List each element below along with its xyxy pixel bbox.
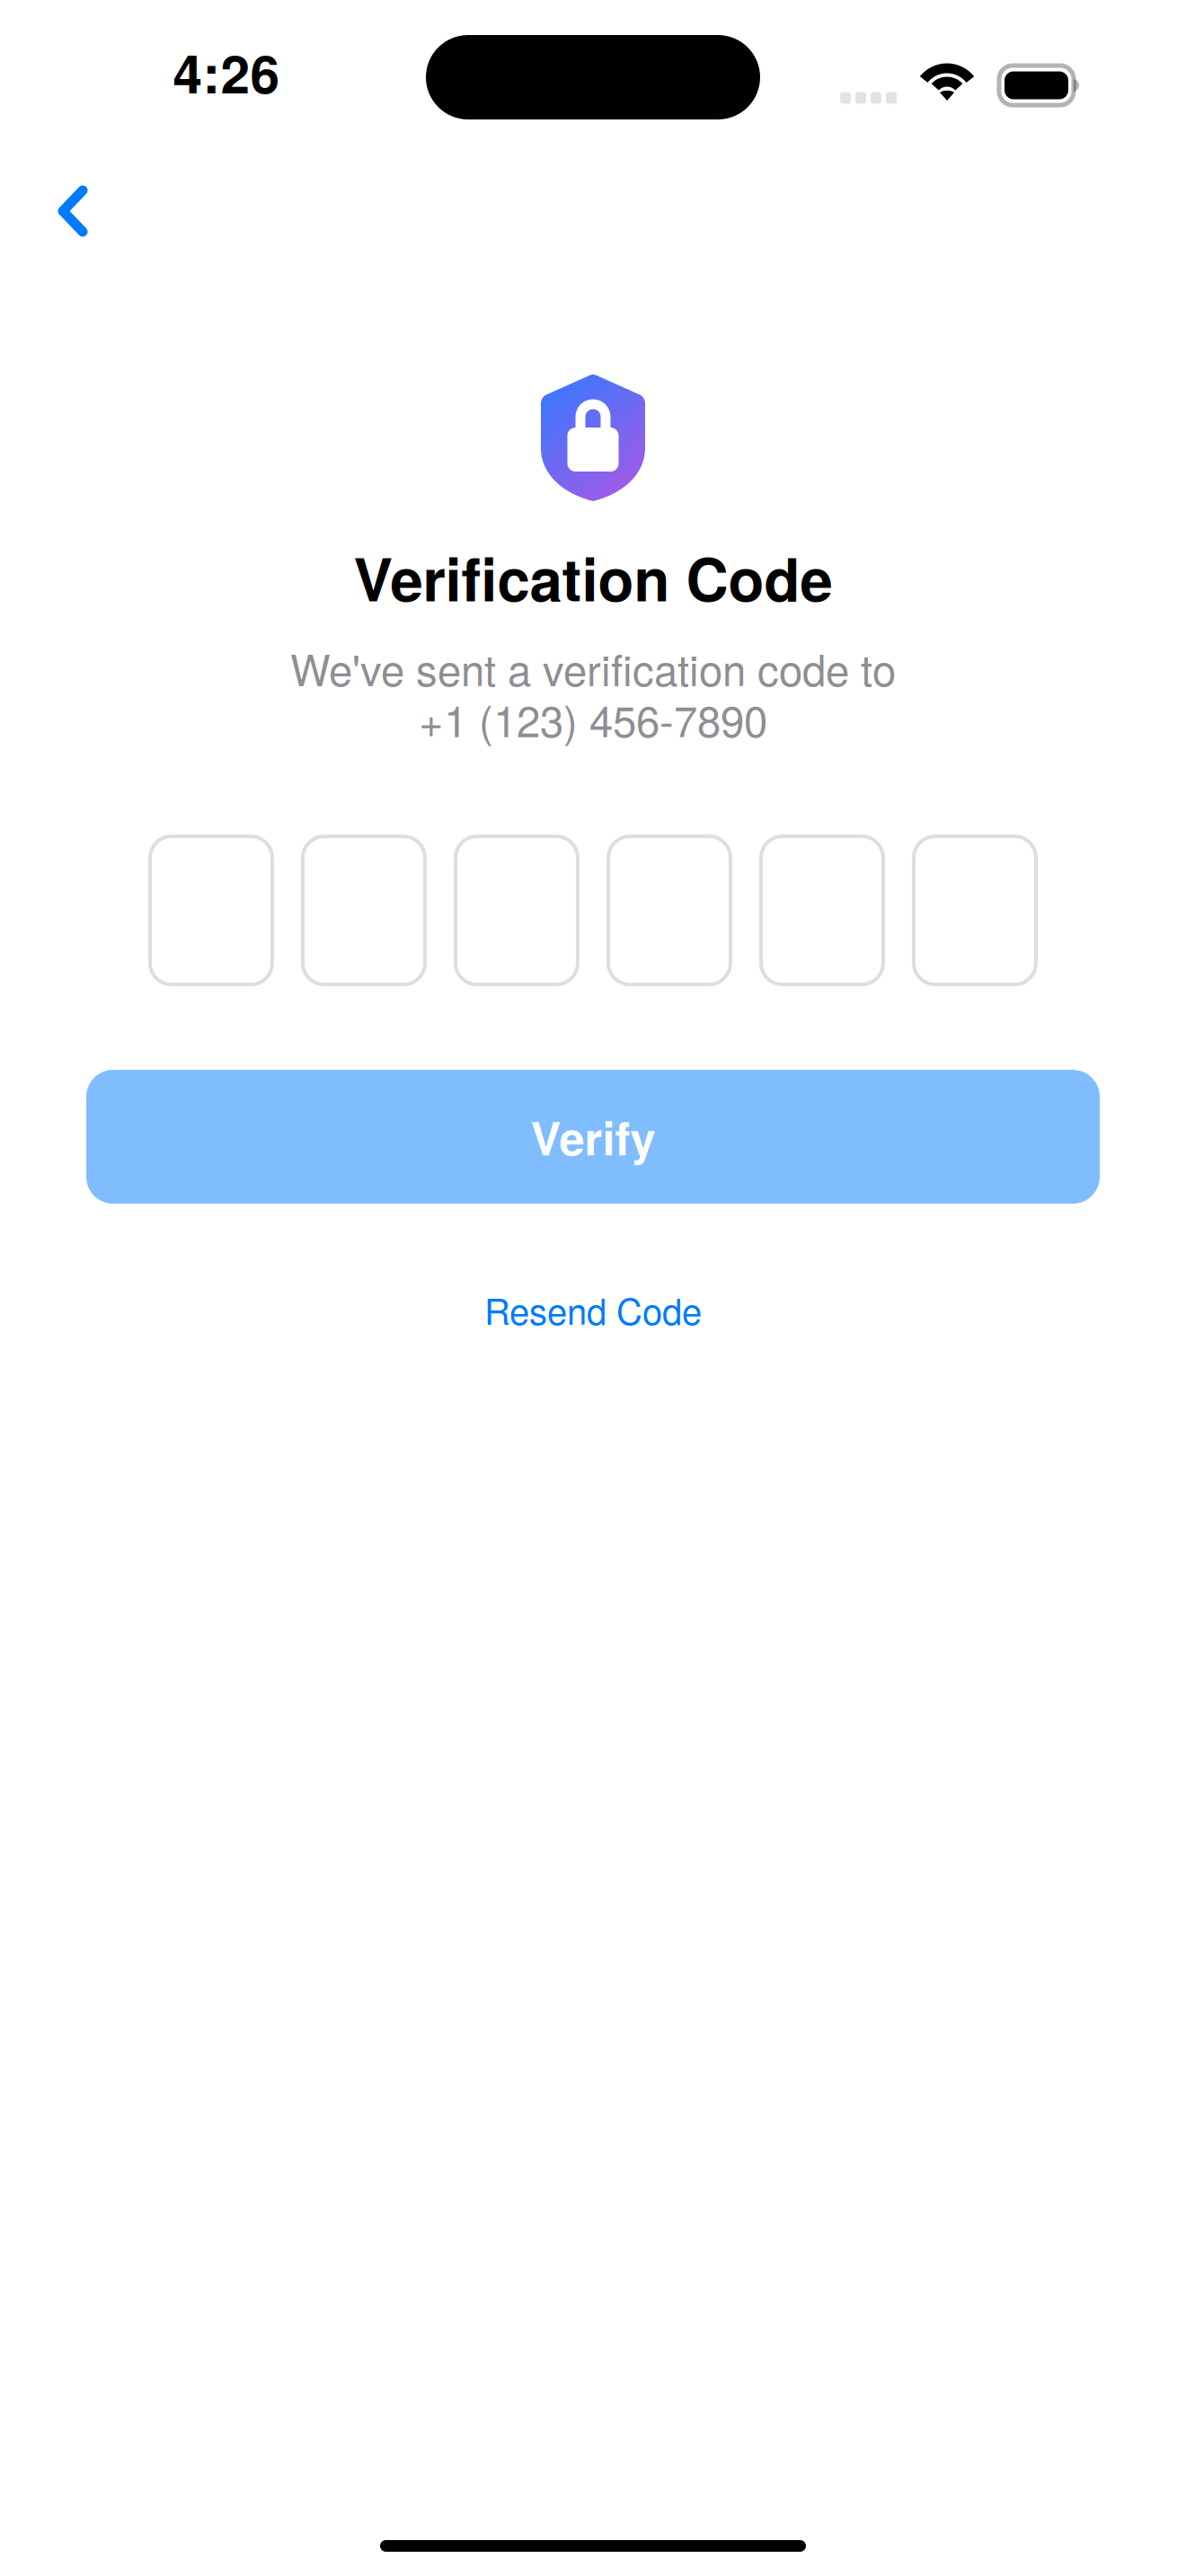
staticText: 4:26 <box>173 34 280 110</box>
button[interactable]: Code digit 1 <box>150 836 272 985</box>
button[interactable]: Resend Code <box>448 1271 738 1348</box>
staticText: Verify <box>531 1104 655 1169</box>
button[interactable]: Back <box>0 144 124 257</box>
staticText: +1 (123) 456-7890 <box>419 688 767 749</box>
button[interactable]: Code digit 2 <box>303 836 425 985</box>
button[interactable]: Code digit 4 <box>608 836 730 985</box>
button[interactable]: Code digit 6 <box>914 836 1036 985</box>
staticText: We've sent a verification code to <box>290 637 896 698</box>
button[interactable]: Code digit 3 <box>456 836 578 985</box>
staticText: Verification Code <box>354 535 832 619</box>
button[interactable]: Code digit 5 <box>761 836 883 985</box>
button[interactable]: Verify <box>86 1070 1100 1204</box>
staticText: Resend Code <box>484 1284 702 1335</box>
